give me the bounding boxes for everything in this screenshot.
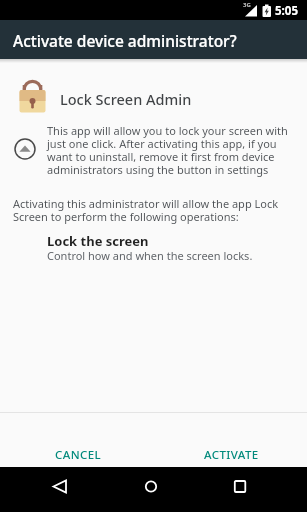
staticText: Activate device administrator? <box>13 30 237 51</box>
staticText: ACTIVATE <box>204 447 259 463</box>
staticText: Lock Screen Admin <box>60 89 192 109</box>
staticText: Activating this administrator will allow… <box>13 196 279 225</box>
staticText: Control how and when the screen locks. <box>47 248 253 263</box>
staticText: Lock the screen <box>47 232 149 250</box>
staticText: 3G <box>243 1 251 9</box>
staticText: CANCEL <box>55 447 102 463</box>
staticText: This app will allow you to lock your scr… <box>47 123 288 178</box>
staticText: 5:05 <box>275 3 298 19</box>
